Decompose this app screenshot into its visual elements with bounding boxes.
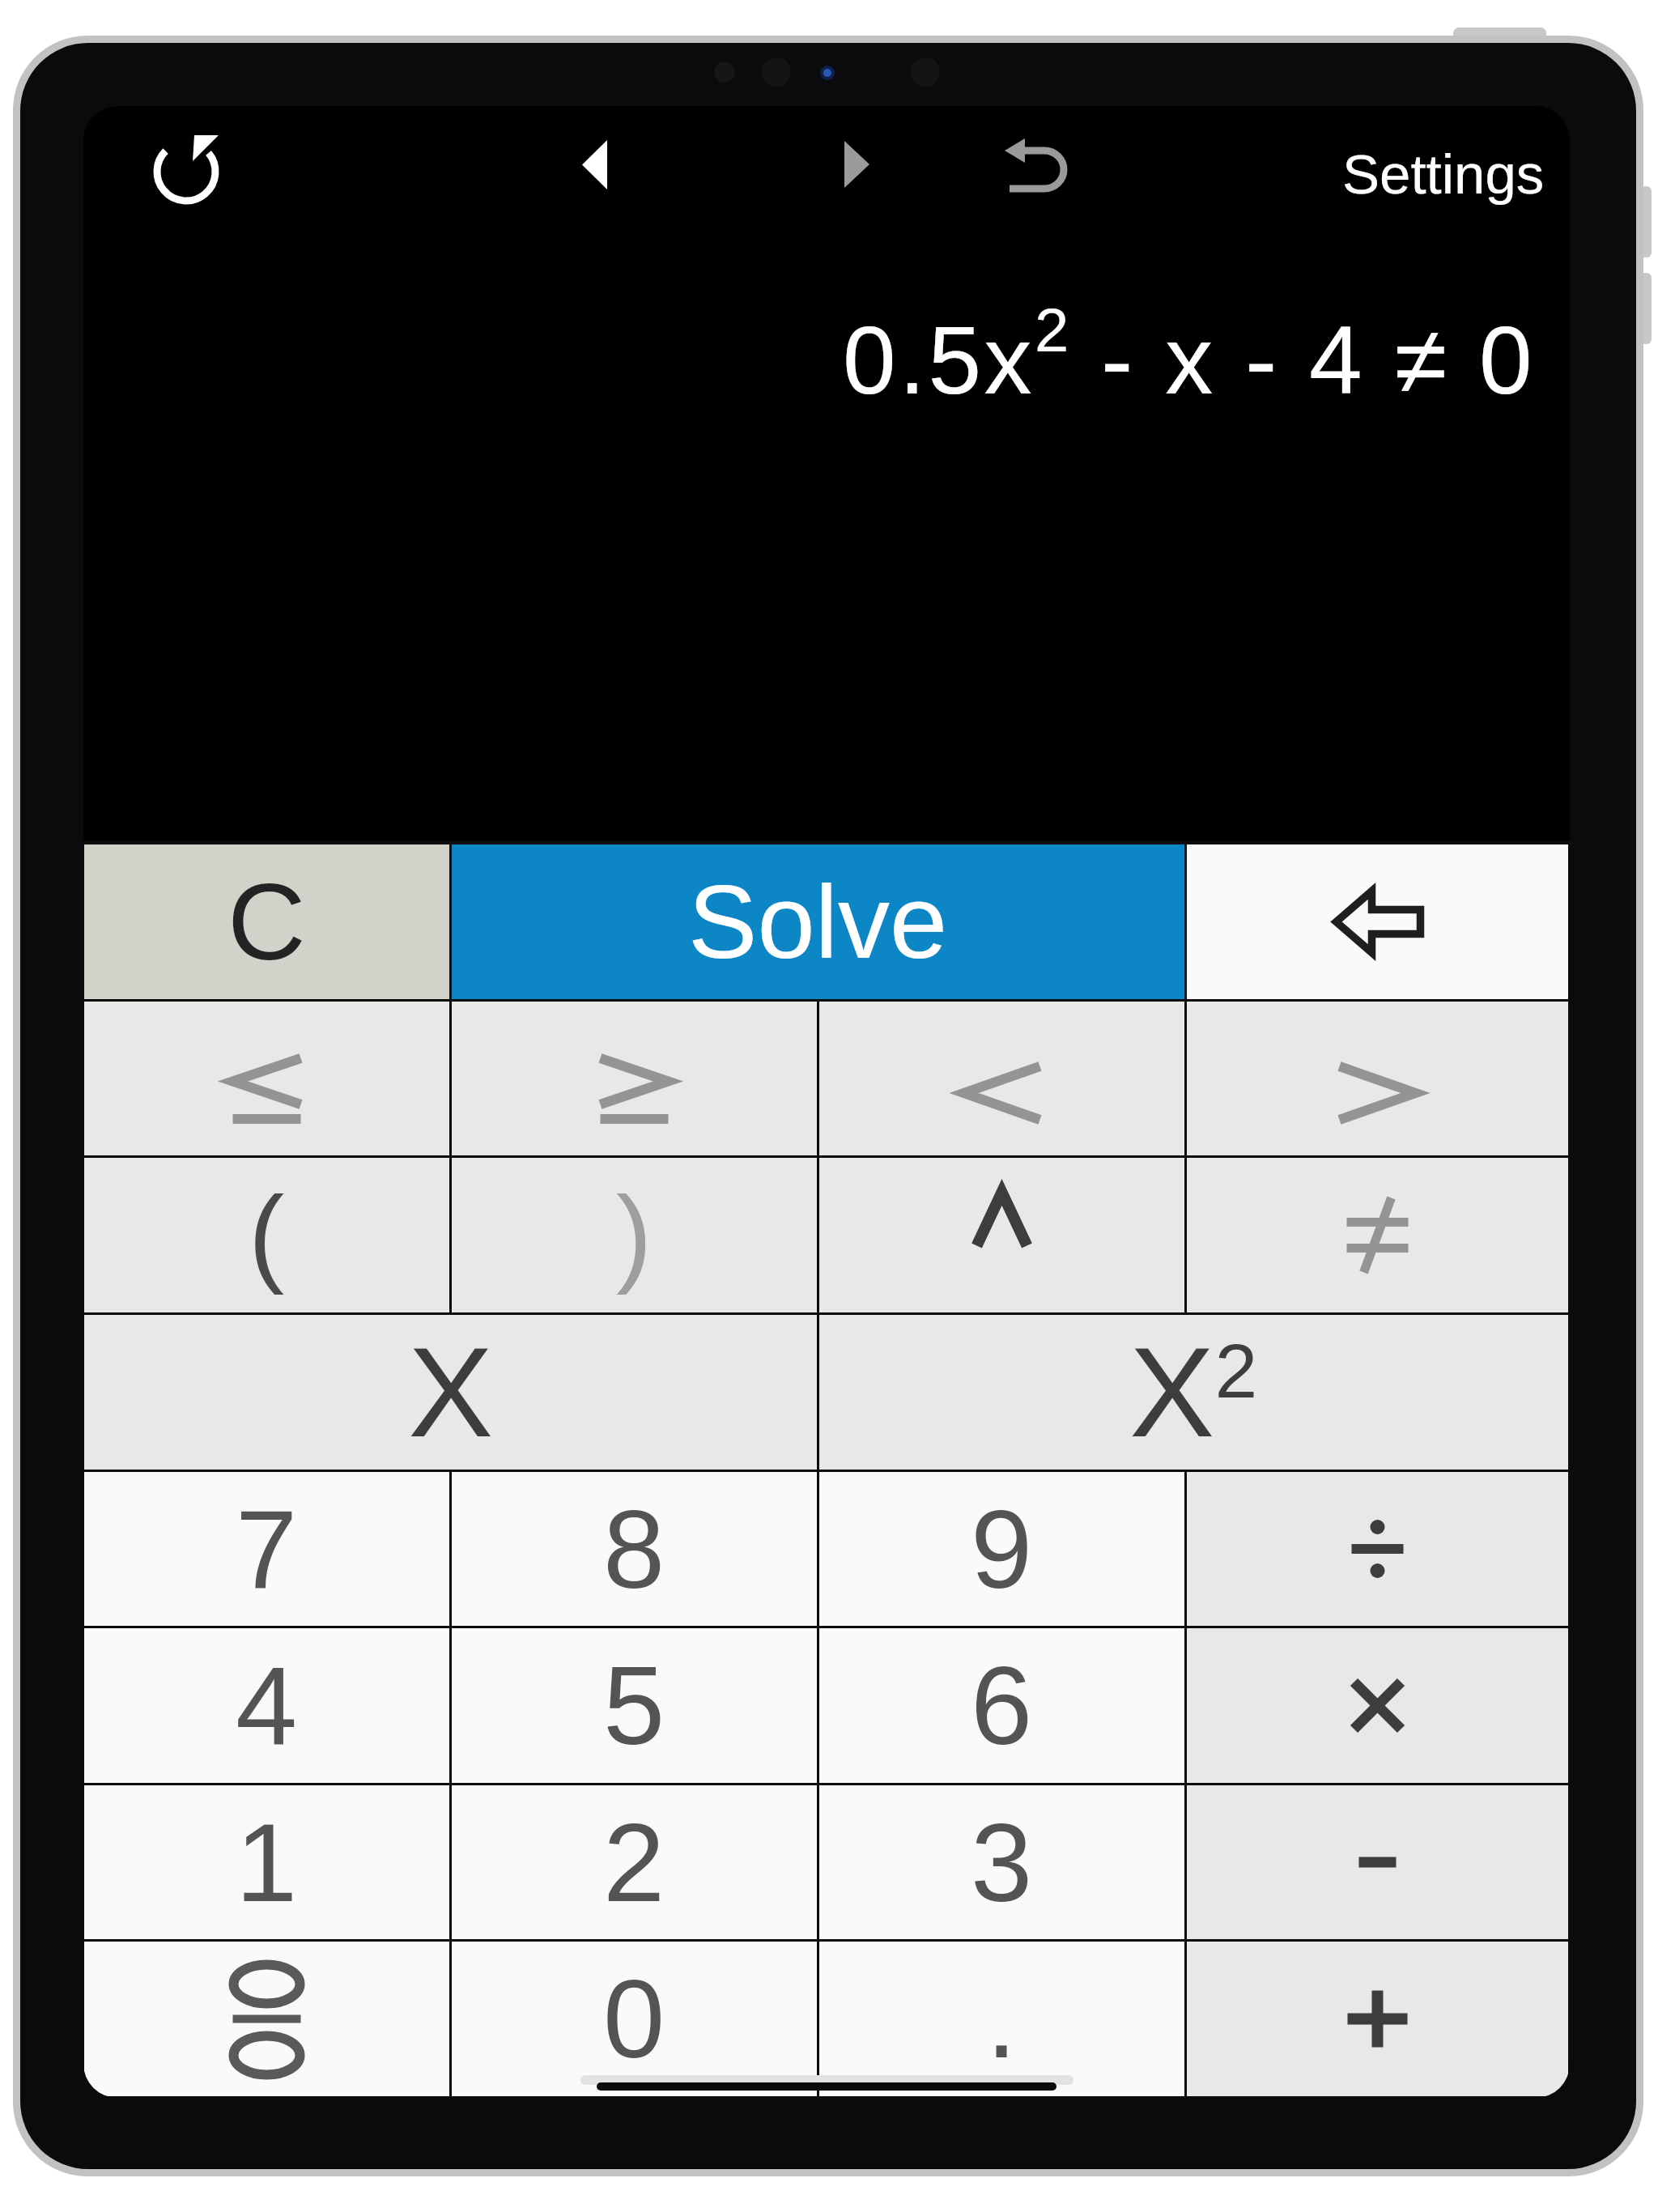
button[interactable]: ( — [84, 1158, 449, 1312]
staticText: 6 — [971, 1644, 1033, 1767]
button[interactable]: Solve — [452, 844, 1184, 999]
staticText: ( — [249, 1175, 285, 1295]
staticText: Solve — [688, 864, 948, 980]
button[interactable] — [1187, 1158, 1568, 1312]
button[interactable]: 8 — [452, 1472, 817, 1626]
button[interactable] — [819, 1158, 1184, 1312]
button[interactable]: 4 — [84, 1628, 449, 1783]
staticText: 1 — [236, 1801, 298, 1925]
button[interactable]: 9 — [819, 1472, 1184, 1626]
staticText: X2 — [1129, 1321, 1258, 1464]
button[interactable]: 1 — [84, 1785, 449, 1939]
button[interactable] — [1187, 1942, 1568, 2096]
staticText: 0 — [603, 1957, 665, 2081]
button[interactable] — [1187, 1785, 1568, 1939]
button[interactable] — [1187, 1472, 1568, 1626]
button[interactable] — [452, 1002, 817, 1155]
button[interactable] — [1187, 1002, 1568, 1155]
staticText: ) — [616, 1175, 653, 1295]
staticText: C — [227, 861, 306, 983]
button[interactable]: X — [84, 1315, 817, 1470]
button[interactable] — [84, 1002, 449, 1155]
staticText: 9 — [971, 1487, 1033, 1611]
button[interactable]: 3 — [819, 1785, 1184, 1939]
button[interactable] — [1187, 1628, 1568, 1783]
button[interactable]: C — [84, 844, 449, 999]
staticText: 3 — [971, 1801, 1033, 1925]
staticText: X — [408, 1321, 494, 1464]
button[interactable]: 0 — [452, 1942, 817, 2096]
staticText: 8 — [603, 1487, 665, 1611]
staticText: 0.5x2 - x - 4 ≠ 0 — [843, 296, 1536, 414]
button[interactable]: X2 — [819, 1315, 1568, 1470]
button[interactable] — [819, 1002, 1184, 1155]
staticText: . — [986, 1957, 1018, 2081]
staticText: Settings — [1342, 143, 1545, 206]
button[interactable]: . — [819, 1942, 1184, 2096]
staticText: 5 — [603, 1644, 665, 1767]
staticText: 4 — [236, 1644, 298, 1767]
button[interactable]: 2 — [452, 1785, 817, 1939]
button[interactable]: Settings — [1213, 141, 1545, 207]
button[interactable]: ) — [452, 1158, 817, 1312]
button[interactable]: 5 — [452, 1628, 817, 1783]
button[interactable]: 6 — [819, 1628, 1184, 1783]
button[interactable]: 7 — [84, 1472, 449, 1626]
button[interactable] — [84, 1942, 449, 2096]
button[interactable] — [1187, 844, 1568, 999]
staticText: 7 — [236, 1487, 298, 1611]
staticText: 2 — [603, 1801, 665, 1925]
